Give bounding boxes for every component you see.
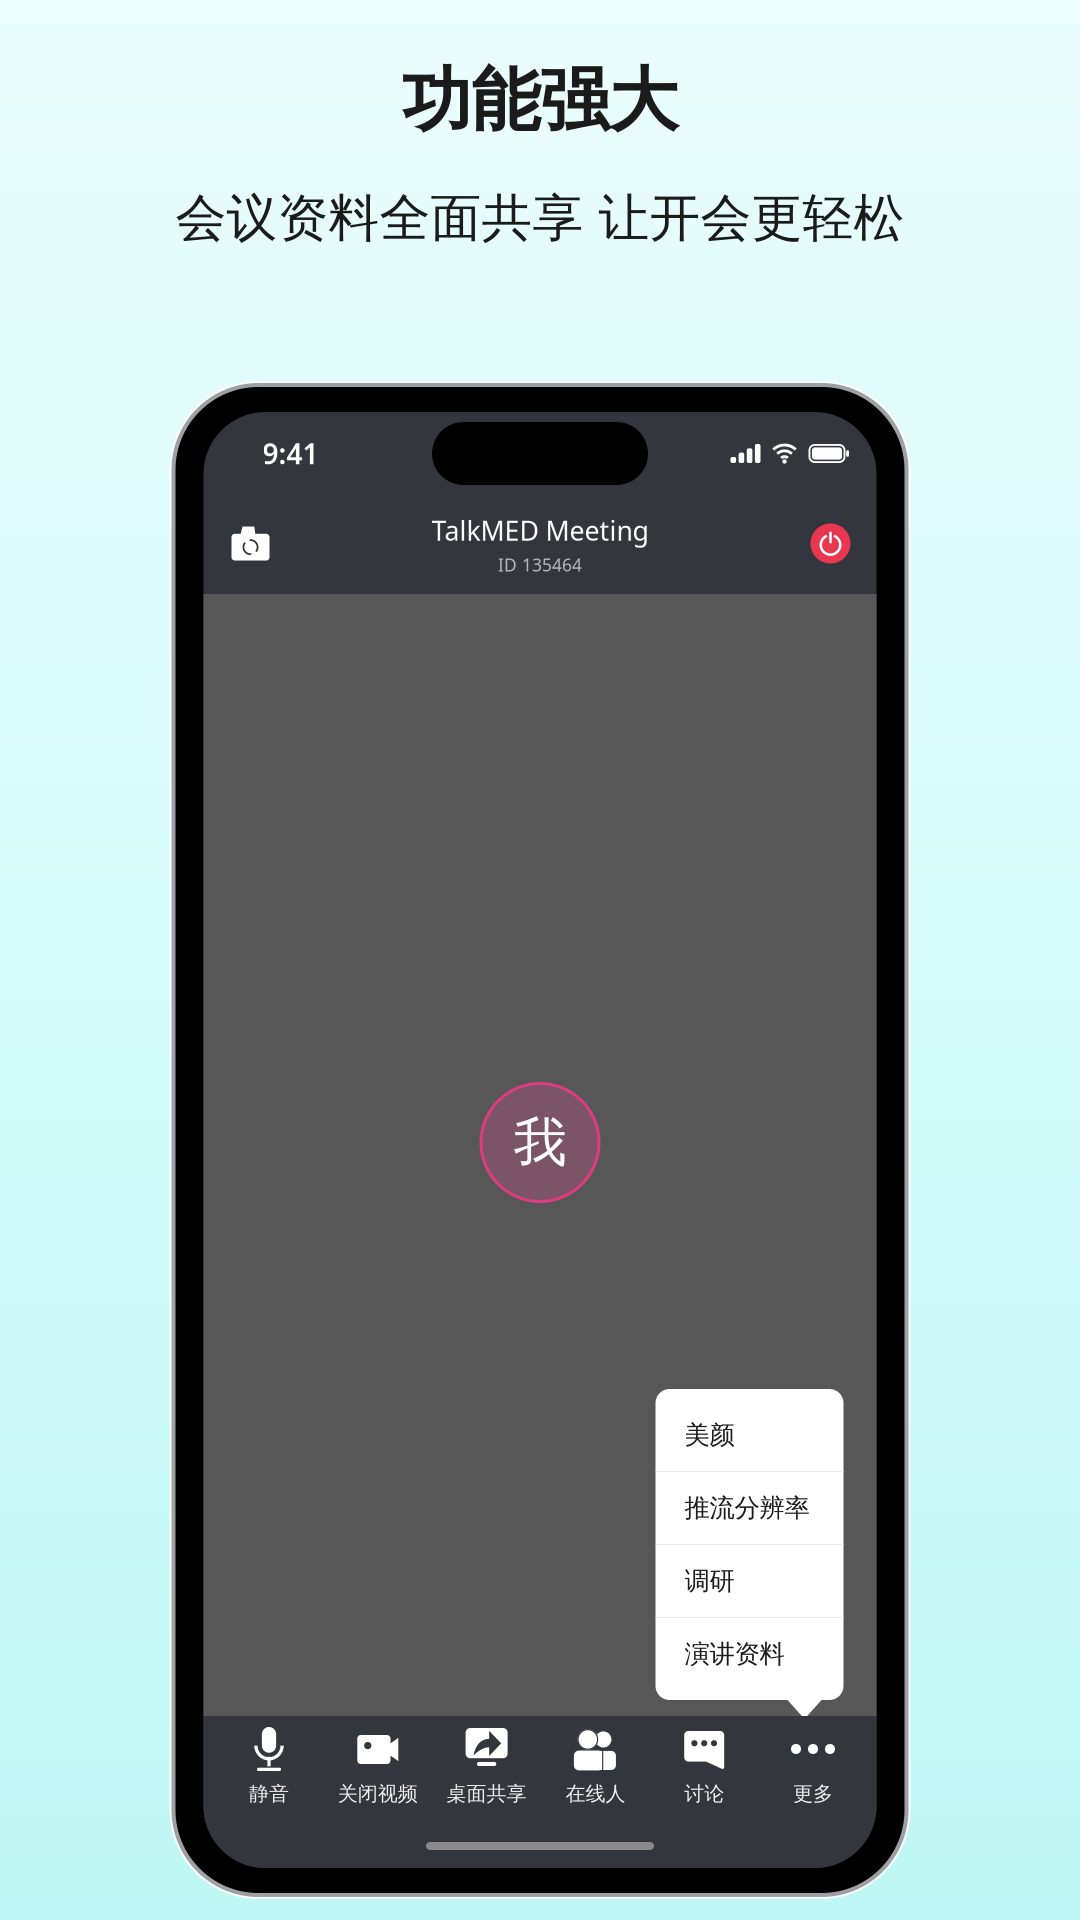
button[interactable]: 推流分辨率 xyxy=(655,1472,843,1544)
staticText: 在线人 xyxy=(565,1781,625,1806)
button[interactable]: 更多 xyxy=(759,1716,867,1814)
staticText: 功能强大 xyxy=(402,58,678,143)
staticText: 9:41 xyxy=(262,435,318,472)
button[interactable]: 关闭视频 xyxy=(323,1716,432,1814)
staticText: 调研 xyxy=(684,1565,734,1596)
button[interactable]: Switch camera xyxy=(212,510,288,578)
staticText: 关闭视频 xyxy=(338,1781,418,1806)
button[interactable]: 桌面共享 xyxy=(432,1716,541,1814)
staticText: 桌面共享 xyxy=(447,1781,527,1806)
button[interactable]: 讨论 xyxy=(650,1716,759,1814)
staticText: TalkMED Meeting xyxy=(431,513,648,548)
staticText: 推流分辨率 xyxy=(684,1492,809,1523)
button[interactable]: Leave meeting xyxy=(792,510,868,578)
staticText: 美颜 xyxy=(684,1419,734,1450)
staticText: 讨论 xyxy=(684,1781,724,1806)
button[interactable]: 演讲资料 xyxy=(655,1618,843,1690)
staticText: 演讲资料 xyxy=(684,1638,784,1669)
button[interactable]: 静音 xyxy=(215,1716,323,1814)
staticText: ID 135464 xyxy=(498,553,582,576)
staticText: 更多 xyxy=(793,1781,833,1806)
staticText: 会议资料全面共享 让开会更轻松 xyxy=(175,187,904,249)
button[interactable]: 调研 xyxy=(655,1545,843,1617)
staticText: 静音 xyxy=(249,1781,289,1806)
button[interactable]: 在线人 xyxy=(541,1716,650,1814)
staticText: 我 xyxy=(513,1110,566,1175)
button[interactable]: 美颜 xyxy=(655,1399,843,1471)
